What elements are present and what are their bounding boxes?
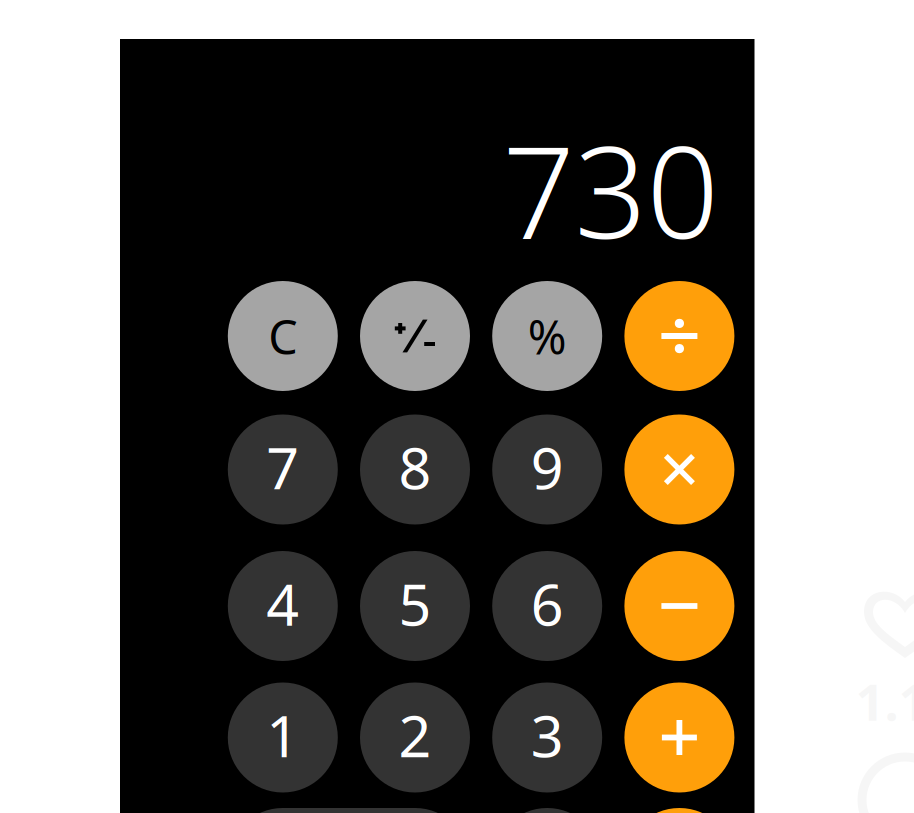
button[interactable]: Equals	[624, 808, 734, 813]
staticText: 9	[531, 429, 564, 505]
button[interactable]: 0	[228, 808, 470, 813]
button[interactable]: 4	[228, 551, 338, 661]
button[interactable]: Add	[624, 682, 734, 792]
button[interactable]: .	[492, 808, 602, 813]
staticText: %	[528, 305, 567, 367]
button[interactable]: Percent	[492, 281, 602, 391]
button[interactable]: 8	[360, 414, 470, 524]
button[interactable]: 6	[492, 551, 602, 661]
staticText: 3	[531, 697, 564, 773]
button[interactable]: 5	[360, 551, 470, 661]
button[interactable]: Multiply	[624, 414, 734, 524]
button[interactable]: 2	[360, 682, 470, 792]
staticText: 5	[398, 565, 431, 641]
button[interactable]: Divide	[624, 281, 734, 391]
staticText: 4	[266, 565, 299, 641]
staticText: 1	[266, 697, 299, 773]
button[interactable]: 1	[228, 682, 338, 792]
button[interactable]: 7	[228, 414, 338, 524]
staticText: 730	[502, 105, 718, 273]
button[interactable]: Subtract	[624, 551, 734, 661]
staticText: C	[268, 305, 297, 367]
staticText: 2	[398, 697, 431, 773]
staticText: 7	[266, 429, 299, 505]
button[interactable]: 3	[492, 682, 602, 792]
button[interactable]: Clear	[228, 281, 338, 391]
button[interactable]: Toggle sign	[360, 281, 470, 391]
button[interactable]: 9	[492, 414, 602, 524]
staticText: 6	[531, 565, 564, 641]
staticText: 8	[398, 429, 431, 505]
